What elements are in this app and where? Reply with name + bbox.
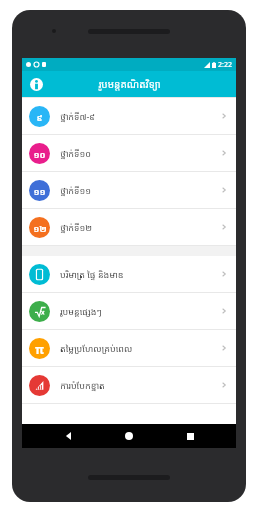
button[interactable]: Back xyxy=(55,424,83,448)
staticText: ថ្នាក់ទី១០ xyxy=(60,147,220,159)
staticText: រូបមន្តគណិតវិទ្យា xyxy=(98,77,161,91)
staticText: ថ្នាក់ទី៧-៩ xyxy=(60,110,220,122)
staticText: ១២ xyxy=(33,222,47,234)
staticText: π xyxy=(35,341,44,357)
button[interactable]: Recent apps xyxy=(176,424,204,448)
button[interactable]: ៩ xyxy=(22,98,236,134)
staticText: រូបមន្តផ្សេងៗ xyxy=(60,305,220,317)
staticText: ថ្នាក់ទី១១ xyxy=(60,184,220,196)
button[interactable]: រូបមន្តផ្សេងៗ xyxy=(22,293,236,329)
staticText: ថ្នាក់ទី១២ xyxy=(60,221,220,233)
button[interactable]: ១២ xyxy=(22,209,236,245)
staticText: តម្លៃប្រហែលគ្រប់ពេល xyxy=(60,342,220,354)
button[interactable]: ការបំបែកខ្នាត xyxy=(22,367,236,403)
button[interactable]: Home xyxy=(115,424,143,448)
staticText: ការបំបែកខ្នាត xyxy=(60,379,220,391)
button[interactable]: បរិមាត្រ ផ្ទៃ និងមាឌ xyxy=(22,256,236,292)
staticText: ១១ xyxy=(33,185,46,197)
staticText: 2:22 xyxy=(218,60,232,70)
button[interactable]: ១១ xyxy=(22,172,236,208)
staticText: បរិមាត្រ ផ្ទៃ និងមាឌ xyxy=(60,268,220,280)
button[interactable]: π xyxy=(22,330,236,366)
staticText: ១០ xyxy=(33,148,46,160)
button[interactable]: Information xyxy=(25,73,47,95)
button[interactable]: ១០ xyxy=(22,135,236,171)
staticText: ៩ xyxy=(36,111,43,123)
